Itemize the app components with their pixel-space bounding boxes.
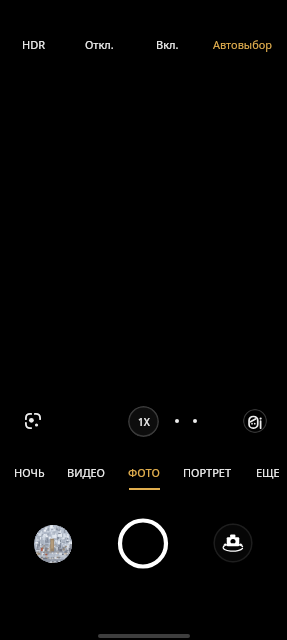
button[interactable]: ВИДЕО	[54, 457, 118, 493]
staticText: 1X	[138, 415, 150, 429]
button[interactable]: 2X zoom	[168, 412, 186, 430]
button[interactable]: Beauty mode	[243, 409, 267, 433]
button[interactable]: Switch camera	[213, 523, 253, 563]
button[interactable]: 5X zoom	[186, 412, 204, 430]
staticText: HDR	[22, 37, 46, 52]
staticText: ЕЩЕ	[256, 465, 280, 480]
button[interactable]: Вкл.	[135, 31, 199, 57]
staticText: Вкл.	[156, 37, 179, 52]
staticText: Откл.	[85, 37, 114, 52]
button[interactable]: AI scan	[15, 403, 51, 439]
staticText: ПОРТРЕТ	[183, 465, 232, 480]
button[interactable]: ФОТО	[112, 457, 176, 493]
button[interactable]: ПОРТРЕТ	[175, 457, 239, 493]
staticText: ВИДЕО	[67, 465, 105, 480]
staticText: НОЧЬ	[14, 465, 45, 480]
button[interactable]: ЕЩЕ	[236, 457, 287, 493]
staticText: Автовыбор	[213, 37, 272, 52]
button[interactable]: Автовыбор	[210, 31, 274, 57]
button[interactable]: Gallery	[34, 525, 72, 563]
button[interactable]: НОЧЬ	[0, 457, 61, 493]
button[interactable]: Откл.	[67, 31, 131, 57]
staticText: ФОТО	[128, 465, 160, 480]
button[interactable]: 1X	[128, 406, 159, 437]
button[interactable]: HDR	[2, 31, 66, 57]
button[interactable]: Take photo	[117, 517, 171, 571]
